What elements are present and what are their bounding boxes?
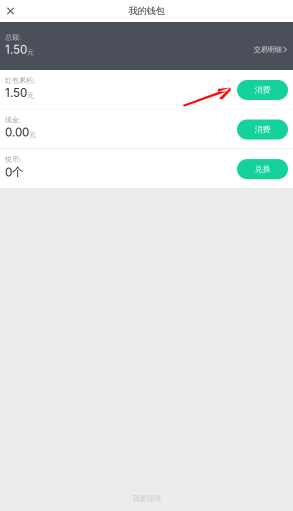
button[interactable]: Close bbox=[0, 0, 21, 21]
staticText: 红包累积: bbox=[5, 76, 35, 85]
button[interactable]: 红包累积: bbox=[0, 70, 293, 109]
button[interactable]: 悦币: bbox=[0, 149, 293, 188]
staticText: 现金: bbox=[5, 116, 21, 124]
button[interactable]: 消费 bbox=[237, 80, 288, 100]
staticText: 1.50 bbox=[5, 86, 27, 100]
staticText: 消费 bbox=[254, 124, 270, 135]
button[interactable]: 现金: bbox=[0, 109, 293, 148]
staticText: 个 bbox=[12, 165, 23, 179]
button[interactable]: 交易明细 bbox=[244, 43, 287, 56]
button[interactable]: 兑换 bbox=[237, 159, 288, 179]
staticText: 元 bbox=[29, 131, 36, 139]
staticText: 1.50 bbox=[5, 43, 27, 57]
staticText: 我的钱包 bbox=[128, 5, 164, 17]
staticText: 消费 bbox=[254, 85, 270, 95]
staticText: 我要提现 bbox=[132, 494, 160, 503]
staticText: 元 bbox=[27, 91, 34, 100]
staticText: 0 bbox=[5, 165, 12, 179]
staticText: 0.00 bbox=[5, 125, 29, 139]
staticText: 悦币: bbox=[5, 155, 21, 164]
staticText: 总额: bbox=[5, 33, 21, 42]
button[interactable]: 消费 bbox=[237, 119, 288, 139]
staticText: 兑换 bbox=[254, 164, 270, 174]
button[interactable]: 我要提现 bbox=[132, 493, 160, 504]
staticText: 元 bbox=[27, 48, 34, 57]
staticText: 交易明细 bbox=[254, 45, 282, 54]
